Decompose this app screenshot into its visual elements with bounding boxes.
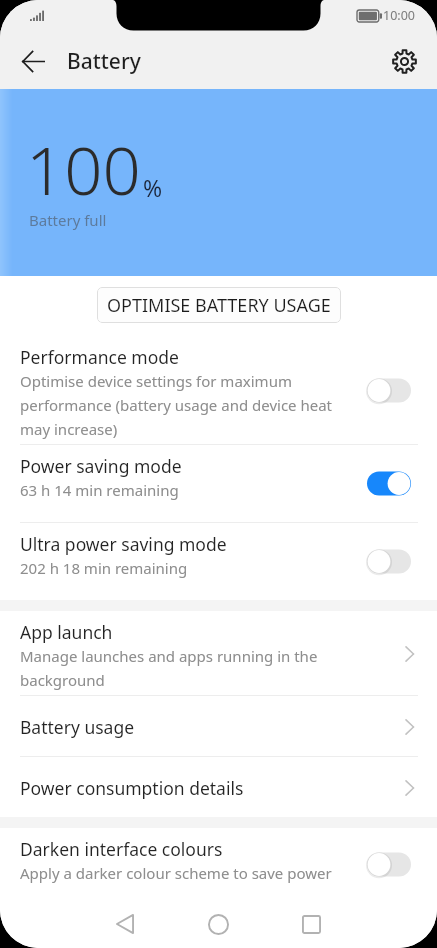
staticText: Battery <box>67 47 141 76</box>
button[interactable]: Back <box>101 902 149 946</box>
staticText: Optimise device settings for maximum per… <box>20 371 340 439</box>
staticText: Darken interface colours <box>20 837 350 861</box>
staticText: Apply a darker colour scheme to save pow… <box>20 863 350 883</box>
button[interactable]: Performance mode <box>0 336 437 444</box>
staticText: 202 h 18 min remaining <box>20 558 340 578</box>
button[interactable]: Recent apps <box>287 902 335 946</box>
staticText: Performance mode <box>20 345 340 369</box>
staticText: Power consumption details <box>20 776 340 800</box>
button[interactable]: Power saving mode <box>0 445 437 522</box>
staticText: Ultra power saving mode <box>20 532 340 556</box>
staticText: Battery usage <box>20 715 340 739</box>
staticText: OPTIMISE BATTERY USAGE <box>107 293 331 318</box>
button[interactable]: Settings <box>382 39 426 83</box>
staticText: % <box>143 172 163 203</box>
button[interactable]: Ultra power saving mode <box>0 523 437 600</box>
staticText: Battery full <box>29 210 107 230</box>
button[interactable]: Power consumption details <box>0 757 437 817</box>
staticText: 63 h 14 min remaining <box>20 480 340 500</box>
staticText: App launch <box>20 620 340 644</box>
button[interactable]: OPTIMISE BATTERY USAGE <box>97 287 341 323</box>
button[interactable]: Home <box>194 902 242 946</box>
button[interactable]: Navigate up <box>9 37 57 85</box>
button[interactable]: App launch <box>0 611 437 695</box>
staticText: 10:00 <box>383 7 415 24</box>
staticText: 100 <box>26 123 141 214</box>
button[interactable]: Battery usage <box>0 696 437 756</box>
staticText: Power saving mode <box>20 454 340 478</box>
staticText: Manage launches and apps running in the … <box>20 646 340 690</box>
button[interactable]: Darken interface colours <box>0 828 437 900</box>
